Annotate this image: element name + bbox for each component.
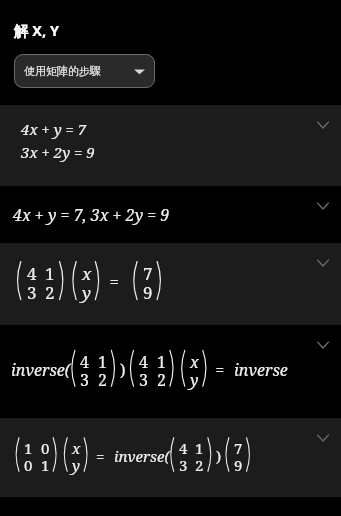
staticText: 2 <box>157 369 166 391</box>
button[interactable]: Expand step <box>311 251 335 275</box>
staticText: 2 <box>45 281 55 304</box>
staticText: 使用矩陣的步驟 <box>24 64 101 78</box>
staticText: y <box>72 455 80 475</box>
staticText: 1 <box>45 262 55 285</box>
staticText: 2 <box>98 369 107 391</box>
staticText: 1 <box>195 438 204 458</box>
staticText: inverse( <box>114 446 170 466</box>
staticText: x <box>72 438 81 458</box>
staticText: 7 <box>143 262 153 285</box>
staticText: ) <box>120 359 126 381</box>
staticText: 3 <box>27 281 37 304</box>
button[interactable]: Expand step <box>311 333 335 357</box>
staticText: x <box>82 262 92 285</box>
staticText: 1 <box>41 455 50 475</box>
staticText: 9 <box>143 281 153 304</box>
staticText: 3x + 2y = 9 <box>21 142 95 162</box>
staticText: 9 <box>234 455 243 475</box>
button[interactable]: inverse( <box>0 325 341 418</box>
staticText: 4x + y = 7 <box>21 119 87 139</box>
staticText: 4 <box>139 351 148 373</box>
staticText: = <box>92 446 109 466</box>
staticText: 0 <box>24 455 33 475</box>
staticText: 7 <box>234 438 243 458</box>
staticText: 1 <box>24 438 33 458</box>
staticText: y <box>190 369 199 391</box>
staticText: inverse <box>234 359 288 381</box>
staticText: 0 <box>41 438 50 458</box>
staticText: x <box>190 351 199 373</box>
button[interactable]: 4x + y = 7, 3x + 2y = 9 <box>0 186 341 243</box>
button[interactable]: 使用矩陣的步驟 <box>14 54 155 88</box>
staticText: 2 <box>195 455 204 475</box>
button[interactable]: 1 <box>0 418 341 497</box>
staticText: 4 <box>27 262 37 285</box>
staticText: ) <box>216 446 222 466</box>
button[interactable]: Expand step <box>311 113 335 137</box>
staticText: y <box>82 281 91 304</box>
staticText: 4 <box>179 438 188 458</box>
staticText: 3 <box>80 369 89 391</box>
staticText: 3 <box>139 369 148 391</box>
button[interactable]: Expand step <box>311 194 335 218</box>
staticText: = <box>105 270 124 293</box>
staticText: 4 <box>80 351 89 373</box>
staticText: 解 X, Y <box>14 20 59 40</box>
staticText: 4x + y = 7, 3x + 2y = 9 <box>13 204 170 226</box>
staticText: 3 <box>179 455 188 475</box>
button[interactable]: 4 <box>0 243 341 325</box>
staticText: 1 <box>157 351 166 373</box>
staticText: = <box>211 359 229 381</box>
staticText: 1 <box>98 351 107 373</box>
button[interactable]: 4x + y = 7 <box>0 105 341 186</box>
button[interactable]: Expand step <box>311 426 335 450</box>
staticText: inverse( <box>11 359 71 381</box>
